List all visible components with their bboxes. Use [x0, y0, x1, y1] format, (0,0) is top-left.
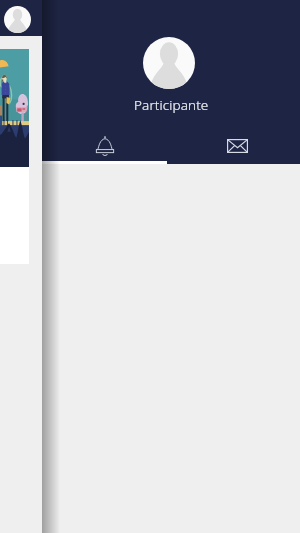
button[interactable]: Mensajes: [171, 125, 300, 159]
staticText: Participante: [134, 96, 209, 114]
button[interactable]: Perfil: [4, 6, 31, 33]
button[interactable]: Notificaciones: [42, 125, 171, 159]
button[interactable]: Foto de perfil: [143, 37, 195, 89]
